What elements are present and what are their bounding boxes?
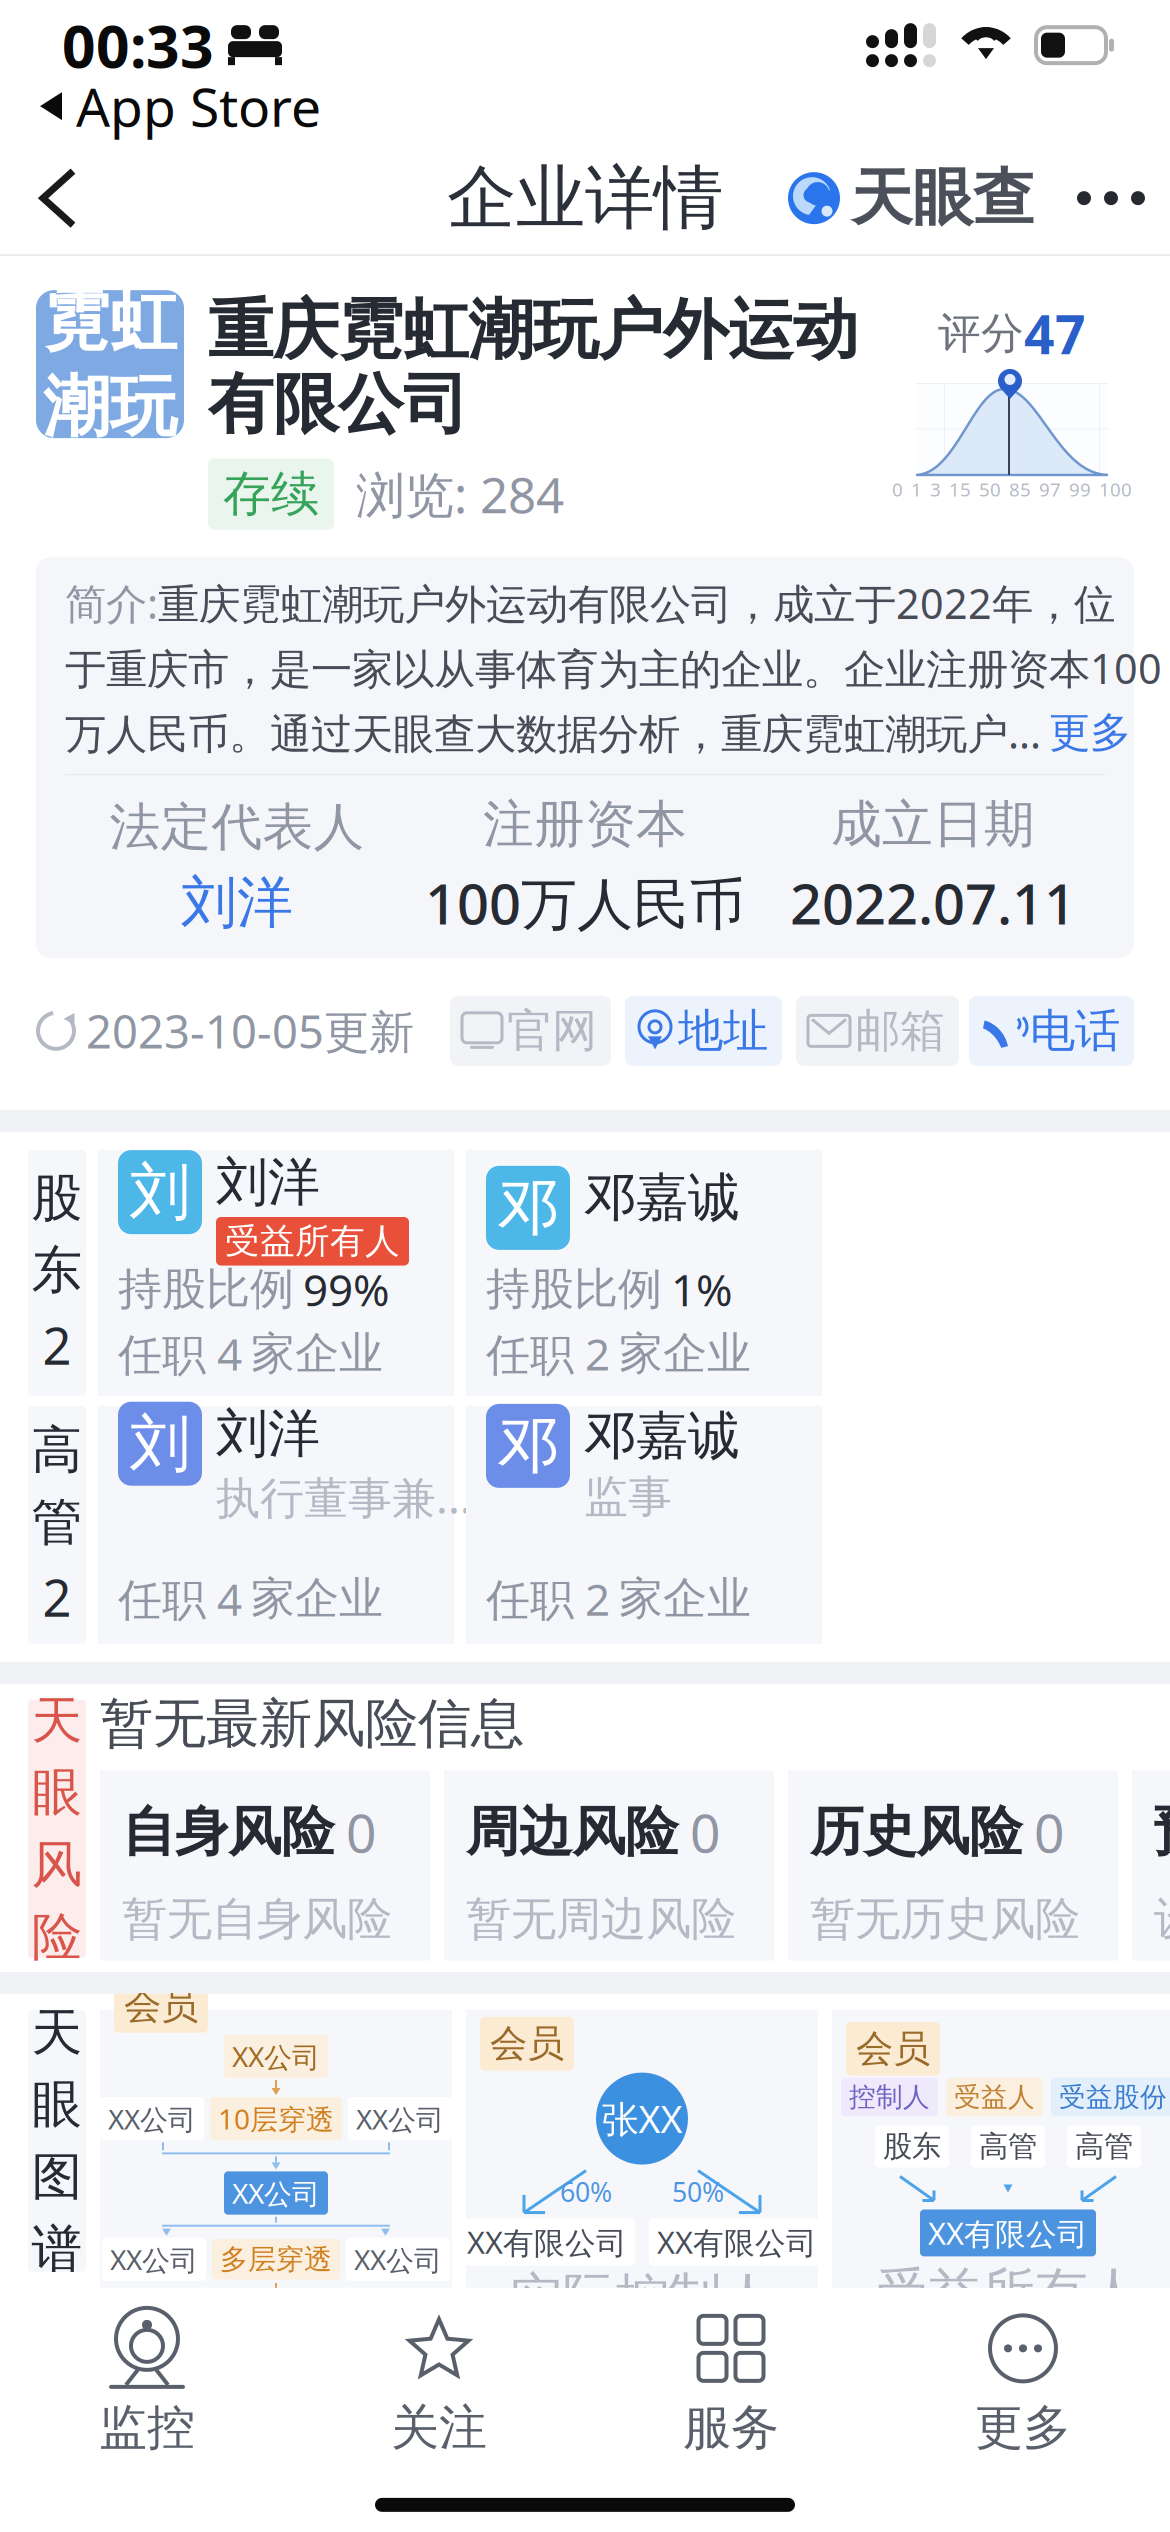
staticText: XX公司 bbox=[232, 2038, 320, 2075]
staticText: XX有限公司 bbox=[467, 2222, 627, 2262]
staticText: 2023-10-05更新 bbox=[86, 1001, 414, 1061]
staticText: 家企业 bbox=[619, 1326, 751, 1380]
staticText: 设置提醒 bbox=[1154, 1891, 1170, 1947]
staticText: 高 bbox=[31, 1419, 82, 1481]
staticText: 00:33 bbox=[62, 6, 214, 84]
staticText: 100 bbox=[1099, 477, 1132, 502]
staticText: 股东 bbox=[883, 2128, 941, 2164]
staticText: 企业详情 bbox=[447, 156, 723, 241]
staticText: 注册资本 bbox=[483, 793, 687, 855]
staticText: 任职 4 bbox=[118, 1569, 242, 1628]
staticText: 服务 bbox=[683, 2398, 779, 2457]
staticText: 受益人 bbox=[954, 2081, 1035, 2113]
staticText: 周边风险 bbox=[466, 1799, 678, 1865]
button[interactable]: 历史风险 bbox=[788, 1771, 1118, 1961]
staticText: 暂无周边风险 bbox=[466, 1891, 736, 1947]
button[interactable]: 服务 bbox=[585, 2310, 877, 2456]
button[interactable]: 电话 bbox=[969, 996, 1134, 1066]
button[interactable]: 会员 bbox=[100, 2010, 452, 2340]
staticText: 张XX bbox=[601, 2094, 682, 2143]
staticText: 浏览: 284 bbox=[356, 461, 564, 527]
button[interactable]: 监控 bbox=[1, 2310, 293, 2456]
staticText: 更多 bbox=[1049, 707, 1131, 758]
staticText: 管 bbox=[31, 1491, 82, 1553]
staticText: 多层穿透 bbox=[220, 2242, 332, 2277]
staticText: 评分 bbox=[938, 307, 1024, 360]
staticText: 暂无最新风险信息 bbox=[100, 1691, 524, 1757]
staticText: App Store bbox=[76, 71, 321, 141]
staticText: 天 bbox=[31, 2001, 82, 2064]
staticText: 眼 bbox=[31, 1762, 82, 1824]
button[interactable]: 关注 bbox=[293, 2310, 585, 2456]
staticText: 重庆霓虹潮玩户外运动有限公司 bbox=[208, 290, 858, 445]
button[interactable]: 会员 bbox=[832, 2010, 1170, 2340]
staticText: 邓嘉诚 bbox=[584, 1166, 740, 1230]
staticText: 刘洋 bbox=[181, 868, 293, 937]
staticText: 邓嘉诚 bbox=[584, 1404, 740, 1468]
staticText: 家企业 bbox=[251, 1572, 383, 1626]
staticText: 暂无自身风险 bbox=[122, 1891, 392, 1947]
staticText: 持股比例 bbox=[486, 1262, 662, 1316]
staticText: 执行董事兼... bbox=[216, 1468, 472, 1526]
staticText: 自身风险 bbox=[122, 1799, 334, 1865]
staticText: 刘洋 bbox=[216, 1150, 320, 1214]
staticText: 99 bbox=[1069, 477, 1091, 502]
staticText: 任职 2 bbox=[486, 1569, 610, 1628]
staticText: 存续 bbox=[223, 465, 319, 524]
staticText: 预警提醒 bbox=[1154, 1799, 1170, 1865]
button[interactable]: 更多 bbox=[877, 2310, 1169, 2456]
button[interactable]: 会员 bbox=[466, 2010, 818, 2340]
staticText: XX公司 bbox=[110, 2241, 198, 2278]
staticText: 3 bbox=[930, 477, 941, 502]
staticText: XX公司 bbox=[354, 2241, 442, 2278]
button[interactable]: 邓 bbox=[466, 1150, 822, 1396]
button[interactable]: 刘 bbox=[98, 1406, 454, 1644]
staticText: XX有限公司 bbox=[928, 2212, 1088, 2253]
staticText: 潮玩 bbox=[43, 366, 177, 448]
staticText: 邓 bbox=[497, 1408, 558, 1483]
button[interactable]: 更多 bbox=[1052, 142, 1170, 254]
staticText: 任职 4 bbox=[118, 1324, 242, 1383]
staticText: 关注 bbox=[391, 2398, 487, 2457]
staticText: 天 bbox=[31, 1689, 82, 1752]
button[interactable]: 地址 bbox=[625, 996, 782, 1066]
staticText: 万人民币。通过天眼查大数据分析，重庆霓虹潮玩户... bbox=[65, 705, 1041, 760]
button[interactable]: 返回 bbox=[0, 142, 116, 254]
staticText: 100万人民币 bbox=[425, 865, 745, 940]
staticText: 实际控制人 bbox=[509, 2265, 774, 2331]
button[interactable]: 评分 47 bbox=[914, 298, 1110, 502]
staticText: 图 bbox=[31, 2146, 82, 2208]
staticText: 受益所有人 bbox=[875, 2260, 1140, 2326]
staticText: XX公司 bbox=[356, 2100, 444, 2137]
staticText: 股权结构-会员 bbox=[108, 2298, 443, 2369]
staticText: 风 bbox=[31, 1834, 82, 1896]
staticText: 0 bbox=[690, 1797, 721, 1867]
staticText: 2 bbox=[42, 1563, 71, 1631]
staticText: 2022.07.11 bbox=[790, 865, 1076, 940]
staticText: 控制人 bbox=[849, 2081, 930, 2113]
staticText: 地址 bbox=[678, 1003, 768, 1059]
staticText: 0 bbox=[892, 477, 903, 502]
staticText: 股 bbox=[31, 1167, 82, 1229]
staticText: 会员 bbox=[124, 1983, 198, 2029]
staticText: 家企业 bbox=[251, 1326, 383, 1380]
staticText: XX公司 bbox=[108, 2100, 196, 2137]
button[interactable]: 天眼查 bbox=[779, 142, 1052, 254]
button[interactable]: 邓 bbox=[466, 1406, 822, 1644]
staticText: 于重庆市，是一家以从事体育为主的企业。企业注册资本100 bbox=[65, 640, 1162, 695]
button[interactable]: 刘 bbox=[98, 1150, 454, 1396]
staticText: 重庆霓虹潮玩户外运动有限公司，成立于2022年，位 bbox=[158, 576, 1115, 630]
button[interactable]: 邮箱 bbox=[796, 996, 959, 1066]
staticText: 2 bbox=[42, 1311, 71, 1379]
staticText: 47 bbox=[1024, 298, 1086, 369]
staticText: 电话 bbox=[1030, 1003, 1120, 1059]
button[interactable]: 周边风险 bbox=[444, 1771, 774, 1961]
button[interactable]: 预警提醒 bbox=[1132, 1771, 1170, 1961]
staticText: 50 bbox=[979, 477, 1001, 502]
staticText: 谱 bbox=[31, 2218, 82, 2280]
staticText: 1% bbox=[671, 1260, 733, 1318]
staticText: 险 bbox=[31, 1906, 82, 1968]
staticText: 50% bbox=[672, 2174, 724, 2209]
button[interactable]: 自身风险 bbox=[100, 1771, 430, 1961]
button[interactable]: 官网 bbox=[450, 996, 611, 1066]
